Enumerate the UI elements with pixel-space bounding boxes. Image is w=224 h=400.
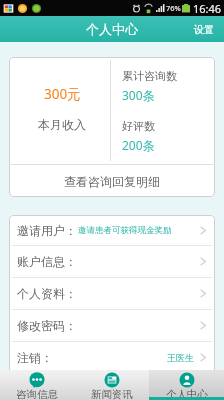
button[interactable]: 新闻资讯 [74,370,149,400]
staticText: 邀请用户： [17,223,77,238]
staticText: 16:46 [193,1,222,16]
button[interactable]: 邀请用户： [9,215,215,245]
staticText: 个人中心 [86,21,138,37]
staticText: 注销： [17,350,53,365]
staticText: 咨询信息 [16,388,58,400]
button[interactable]: 账户信息： [9,246,215,277]
staticText: 设置 [194,23,214,36]
button[interactable]: 设置 [184,18,224,41]
staticText: 累计咨询数 [122,69,177,83]
staticText: 邀请患者可获得现金奖励 [78,225,172,236]
button[interactable]: 注销： [9,342,215,373]
staticText: 300元 [44,85,81,103]
button[interactable]: 修改密码： [9,310,215,341]
staticText: 王医生 [167,352,194,363]
staticText: 76% [166,3,181,13]
staticText: 修改密码： [17,318,77,333]
button[interactable]: 个人中心 [149,370,224,400]
staticText: 新闻资讯 [91,388,133,400]
staticText: 账户信息： [17,254,77,269]
button[interactable]: 查看咨询回复明细 [9,165,215,197]
button[interactable]: 咨询信息 [0,370,74,400]
staticText: 个人中心 [166,388,208,400]
staticText: 本月收入 [38,117,86,132]
staticText: 300条 [122,87,155,103]
staticText: 个人资料： [17,286,77,301]
staticText: 200条 [122,137,155,153]
button[interactable]: 个人资料： [9,278,215,309]
staticText: 查看咨询回复明细 [64,174,160,189]
staticText: 好评数 [122,119,155,133]
